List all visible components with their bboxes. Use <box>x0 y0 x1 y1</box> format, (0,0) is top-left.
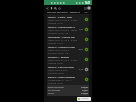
staticText: Gasto total 31,90 € · 2 pax <box>48 58 77 61</box>
button[interactable]: Mostrador · Centro Del <box>47 34 89 44</box>
staticText: Mesa 6 · Lab Uso Dest <box>48 65 74 68</box>
staticText: 9:41 <box>85 1 91 5</box>
button[interactable]: Mesa 1 · Laura · Sala <box>47 14 89 24</box>
staticText: Abierta 16:05 <box>48 61 63 64</box>
staticText: Comensales 2 · 20:11 <box>48 78 72 81</box>
staticText: IVA incluido <box>48 89 61 92</box>
staticText: Gasto total 24,50 € · Mesa <box>48 28 77 31</box>
staticText: 1,20 <box>77 28 83 31</box>
staticText: Abierta 14:10 <box>48 41 63 44</box>
staticText: Abierta 12:40 <box>48 21 63 24</box>
staticText: Gasto total 19,00 € · 4 pax <box>48 18 77 21</box>
staticText: Cobrar mesa <box>81 97 90 101</box>
staticText: Abierta 18:02 <box>48 81 63 84</box>
staticText: Base imponible <box>48 86 64 89</box>
button[interactable]: Add <box>57 6 61 10</box>
staticText: Mesa 4 · Amparo Nada <box>48 45 75 48</box>
button[interactable]: Mesa 2 · Comensales 4 <box>47 24 89 34</box>
button[interactable]: Menu <box>83 6 87 10</box>
button[interactable]: Barra 2 · Pack Farigeno <box>47 74 89 84</box>
staticText: 8,50 <box>77 48 83 51</box>
staticText: 2,40 <box>77 68 83 71</box>
button[interactable]: Back <box>45 6 49 10</box>
button[interactable]: Filter <box>49 6 53 10</box>
button[interactable]: Cobrar mesa <box>77 97 91 101</box>
staticText: 134,20 <box>81 86 88 89</box>
staticText: Cerrada 16:44 <box>48 71 64 74</box>
staticText: 147,62 <box>81 92 88 95</box>
staticText: Cerrada 13:02 · ok <box>48 31 69 34</box>
staticText: Gasto total 8,50 € <box>48 68 68 71</box>
staticText: Gasto total 12,60 € <box>48 48 70 51</box>
staticText: 13,42 <box>82 89 88 92</box>
staticText: LISTADO DE MESAS · ABIERTAS <box>47 11 80 14</box>
staticText: Mesa 2 · Comensales 4 <box>48 25 75 28</box>
staticText: Barra 2 · Pack Farigeno <box>48 75 75 78</box>
button[interactable]: Mesa 4 · Amparo Nada <box>47 44 89 54</box>
staticText: Mesa 1 · Laura · Sala <box>48 15 72 18</box>
button[interactable]: Mesa 6 · Lab Uso Dest <box>47 64 89 74</box>
staticText: HOY <box>84 11 89 14</box>
button[interactable]: Account <box>87 6 91 10</box>
staticText: Mostrador · Centro Del <box>48 35 75 38</box>
staticText: TOTAL <box>48 92 55 95</box>
staticText: Cerrada 15:30 · ok <box>48 51 69 54</box>
staticText: Terraza 1 · Belleza <box>48 55 69 58</box>
button[interactable]: Search <box>53 6 57 10</box>
staticText: Gasto total 41,20 € · 6 pax <box>48 38 77 41</box>
button[interactable]: Terraza 1 · Belleza <box>47 54 89 64</box>
